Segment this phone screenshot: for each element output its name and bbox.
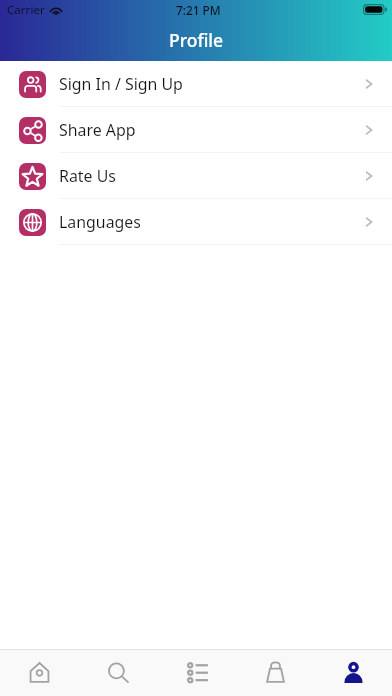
staticText: Languages	[59, 211, 141, 233]
staticText: 7:21 PM	[176, 2, 221, 18]
button[interactable]: Search	[79, 649, 158, 696]
button[interactable]: Languages	[0, 199, 392, 245]
button[interactable]: Share App	[0, 107, 392, 153]
button[interactable]: Cart	[236, 649, 314, 696]
staticText: Rate Us	[59, 165, 116, 187]
staticText: Share App	[59, 119, 136, 141]
button[interactable]: Profile	[314, 649, 392, 696]
button[interactable]: Rate Us	[0, 153, 392, 199]
staticText: Carrier	[7, 2, 45, 18]
button[interactable]: Home	[0, 649, 79, 696]
button[interactable]: Orders	[158, 649, 236, 696]
staticText: Profile	[169, 28, 224, 52]
button[interactable]: Sign In / Sign Up	[0, 61, 392, 107]
staticText: Sign In / Sign Up	[59, 73, 183, 95]
